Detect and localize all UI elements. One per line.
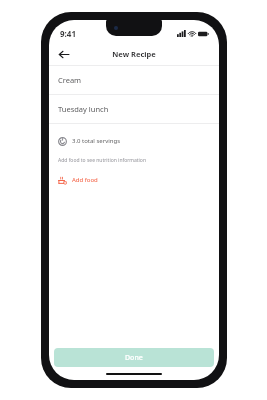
button[interactable]: 3.0 total servings xyxy=(49,133,219,149)
staticText: 9:41 xyxy=(60,28,76,39)
staticText: New Recipe xyxy=(112,49,156,59)
button[interactable]: Tuesday lunch xyxy=(49,95,219,123)
staticText: Tuesday lunch xyxy=(58,104,109,114)
staticText: 3.0 total servings xyxy=(72,137,121,145)
staticText: Done xyxy=(125,353,143,363)
button[interactable]: Cream xyxy=(49,66,219,94)
button[interactable]: Add food xyxy=(49,173,219,187)
staticText: Add food xyxy=(72,176,98,184)
staticText: Add food to see nutrition information xyxy=(58,157,146,164)
button[interactable]: Back xyxy=(54,44,74,64)
staticText: Cream xyxy=(58,75,82,85)
button[interactable]: Done xyxy=(54,348,214,367)
